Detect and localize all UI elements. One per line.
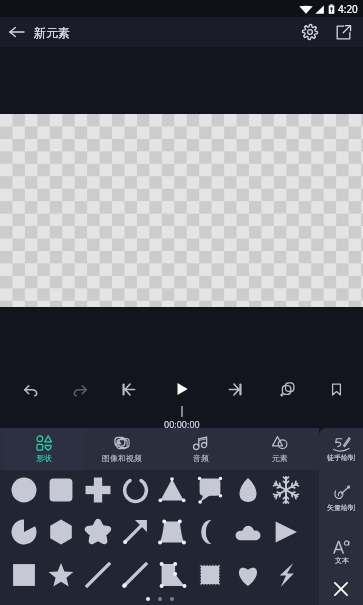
- button[interactable]: Shape 24: [267, 553, 305, 596]
- button[interactable]: 图像和视频: [83, 428, 161, 470]
- staticText: 矢量绘制: [327, 503, 355, 512]
- button[interactable]: Loop: [275, 378, 301, 400]
- button[interactable]: Shape 18: [42, 553, 79, 596]
- staticText: 音频: [193, 453, 209, 463]
- button[interactable]: Shape 22: [191, 553, 229, 596]
- button[interactable]: Shape 2: [42, 470, 79, 510]
- button[interactable]: 矢量绘制: [319, 485, 363, 517]
- button[interactable]: Shape 8: [267, 470, 305, 510]
- button[interactable]: Export: [329, 18, 357, 46]
- staticText: 4:20: [338, 2, 358, 16]
- button[interactable]: Shape 14: [191, 510, 229, 553]
- button[interactable]: Shape 12: [116, 510, 153, 553]
- button[interactable]: Bookmark: [323, 378, 349, 400]
- button[interactable]: Shape 13: [153, 510, 191, 553]
- button[interactable]: Shape 23: [229, 553, 267, 596]
- button[interactable]: Settings: [296, 18, 324, 46]
- button[interactable]: 文本: [319, 538, 363, 570]
- button[interactable]: Shape 5: [153, 470, 191, 510]
- staticText: 元素: [272, 453, 288, 463]
- staticText: 形状: [36, 453, 52, 463]
- button[interactable]: Shape 20: [116, 553, 153, 596]
- button[interactable]: Redo: [67, 378, 93, 400]
- button[interactable]: Back: [4, 19, 30, 45]
- button[interactable]: 形状: [5, 428, 83, 470]
- button[interactable]: Shape 4: [116, 470, 153, 510]
- button[interactable]: Skip to start: [115, 378, 141, 400]
- staticText: 文本: [335, 556, 349, 565]
- button[interactable]: Shape 7: [229, 470, 267, 510]
- button[interactable]: Play: [169, 378, 195, 400]
- staticText: 徒手绘制: [327, 453, 355, 462]
- button[interactable]: 元素: [240, 428, 319, 470]
- button[interactable]: Shape 17: [5, 553, 42, 596]
- button[interactable]: Shape 3: [79, 470, 116, 510]
- button[interactable]: Close: [319, 574, 363, 604]
- button[interactable]: Shape 15: [229, 510, 267, 553]
- button[interactable]: 徒手绘制: [319, 435, 363, 467]
- button[interactable]: 音频: [161, 428, 240, 470]
- button[interactable]: Shape 19: [79, 553, 116, 596]
- staticText: 新元素: [34, 25, 70, 40]
- staticText: 图像和视频: [102, 453, 142, 463]
- button[interactable]: Skip to end: [222, 378, 248, 400]
- button[interactable]: Shape 11: [79, 510, 116, 553]
- button[interactable]: Shape 9: [5, 510, 42, 553]
- button[interactable]: Shape 21: [153, 553, 191, 596]
- button[interactable]: Shape 16: [267, 510, 305, 553]
- button[interactable]: Shape 10: [42, 510, 79, 553]
- button[interactable]: Shape 1: [5, 470, 42, 510]
- staticText: 00:00:00: [164, 418, 200, 428]
- button[interactable]: Undo: [17, 378, 43, 400]
- button[interactable]: Shape 6: [191, 470, 229, 510]
